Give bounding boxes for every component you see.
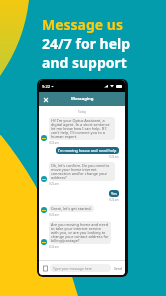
button[interactable]: Yes (109, 190, 119, 197)
staticText: 9:22 (42, 84, 50, 89)
staticText: Hi! I'm your Optus Assistant, a digital … (51, 118, 113, 139)
button[interactable]: Hi! I'm your Optus Assistant, a digital … (49, 117, 115, 140)
staticText: Today (41, 110, 123, 114)
staticText: 24/7 for help (42, 34, 131, 53)
staticText: Message us (42, 15, 123, 34)
staticText: 9:22 am (49, 213, 59, 217)
button[interactable]: Are you moving home and need to take you… (49, 221, 111, 244)
button[interactable]: Great, let's get started. (49, 205, 94, 212)
staticText: Send (114, 266, 122, 271)
button[interactable]: Attach file (42, 265, 48, 271)
staticText: 9:22 am (49, 141, 59, 145)
staticText: 9:22 am (109, 198, 119, 202)
staticText: I'm moving house and need help (58, 148, 117, 153)
button[interactable]: I'm moving house and need help (56, 147, 119, 154)
staticText: Messaging (71, 96, 94, 102)
staticText: 9:22 am (109, 155, 119, 159)
button[interactable]: Close (41, 95, 50, 104)
staticText: Are you moving home and need to take you… (51, 222, 109, 243)
staticText: and support (42, 53, 127, 72)
staticText: Great, let's get started. (51, 206, 92, 211)
staticText: Ok, let's confirm. Do you need to move y… (51, 163, 113, 180)
button[interactable]: Type your message here (50, 264, 111, 272)
button[interactable]: Send (114, 266, 122, 271)
staticText: 9:22 am (49, 245, 59, 249)
staticText: Yes (111, 191, 117, 196)
staticText: Type your message here (53, 266, 92, 271)
staticText: 9:22 am (49, 182, 59, 186)
button[interactable]: Ok, let's confirm. Do you need to move y… (49, 162, 115, 181)
